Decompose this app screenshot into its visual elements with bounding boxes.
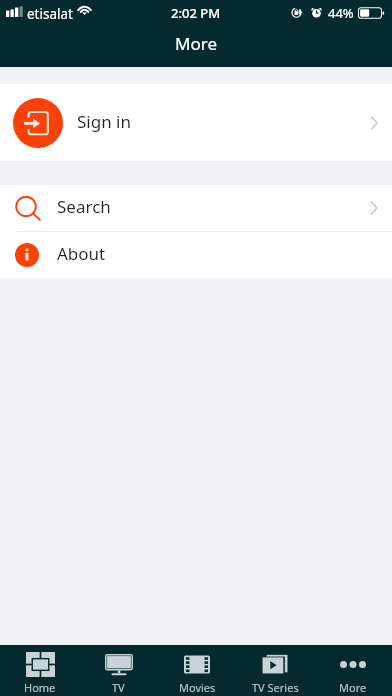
- staticText: About: [57, 242, 106, 265]
- staticText: Search: [57, 195, 111, 218]
- staticText: 2:02 PM: [171, 4, 221, 22]
- staticText: More: [175, 32, 217, 55]
- button[interactable]: More: [314, 645, 392, 696]
- staticText: TV Series: [252, 680, 299, 695]
- button[interactable]: TV Series: [236, 645, 314, 696]
- button[interactable]: Home: [0, 645, 79, 696]
- button[interactable]: TV: [79, 645, 158, 696]
- button[interactable]: Sign in: [0, 84, 392, 161]
- button[interactable]: Movies: [158, 645, 236, 696]
- staticText: More: [339, 680, 367, 695]
- button[interactable]: About: [0, 232, 392, 278]
- staticText: TV: [112, 680, 125, 695]
- staticText: 44%: [328, 4, 354, 22]
- staticText: Movies: [179, 680, 216, 695]
- staticText: etisalat: [27, 5, 73, 23]
- staticText: Sign in: [77, 110, 131, 133]
- button[interactable]: Search: [0, 185, 392, 231]
- staticText: Home: [24, 680, 56, 695]
